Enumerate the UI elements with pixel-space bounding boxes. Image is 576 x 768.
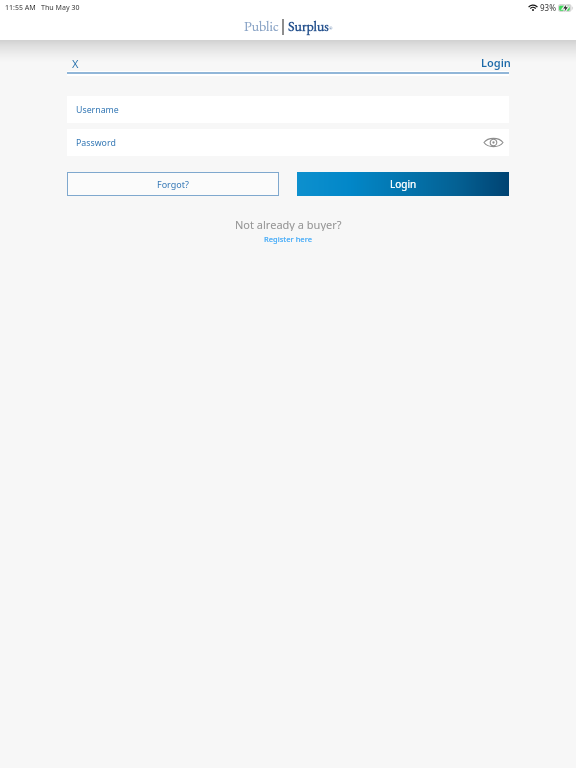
button[interactable]: Login bbox=[297, 172, 509, 196]
button[interactable]: Password bbox=[67, 129, 509, 156]
button[interactable]: Show password bbox=[482, 131, 504, 153]
staticText: Password bbox=[76, 137, 116, 149]
staticText: Public bbox=[244, 17, 279, 35]
button[interactable]: Username bbox=[67, 96, 509, 123]
staticText: Register here bbox=[264, 234, 312, 244]
staticText: Surplus bbox=[288, 17, 329, 35]
button[interactable]: Forgot? bbox=[67, 172, 279, 196]
staticText: Login bbox=[481, 55, 511, 70]
staticText: Username bbox=[76, 104, 119, 116]
staticText: 11:55 AM bbox=[5, 3, 36, 13]
staticText: ® bbox=[329, 25, 333, 32]
staticText: 93% bbox=[540, 2, 556, 13]
staticText: Login bbox=[390, 177, 417, 191]
staticText: X bbox=[72, 56, 79, 71]
button[interactable]: Login bbox=[478, 54, 514, 70]
button[interactable]: Register here bbox=[264, 234, 312, 244]
button[interactable]: Close bbox=[68, 56, 82, 71]
staticText: Not already a buyer? bbox=[235, 217, 342, 231]
staticText: Thu May 30 bbox=[41, 3, 80, 13]
staticText: Forgot? bbox=[157, 178, 189, 190]
